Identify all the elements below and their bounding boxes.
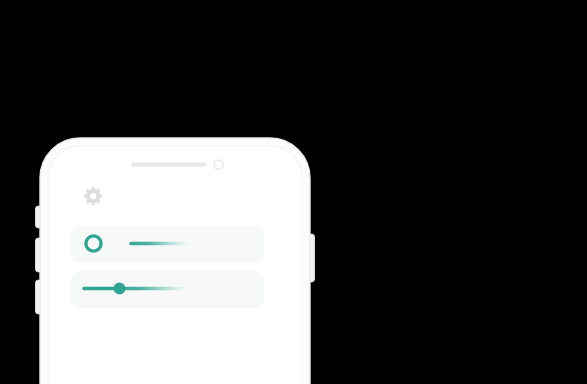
button[interactable]: Adjust slider	[72, 271, 263, 306]
button[interactable]: Toggle option	[72, 226, 263, 261]
button[interactable]: Settings	[84, 187, 103, 206]
